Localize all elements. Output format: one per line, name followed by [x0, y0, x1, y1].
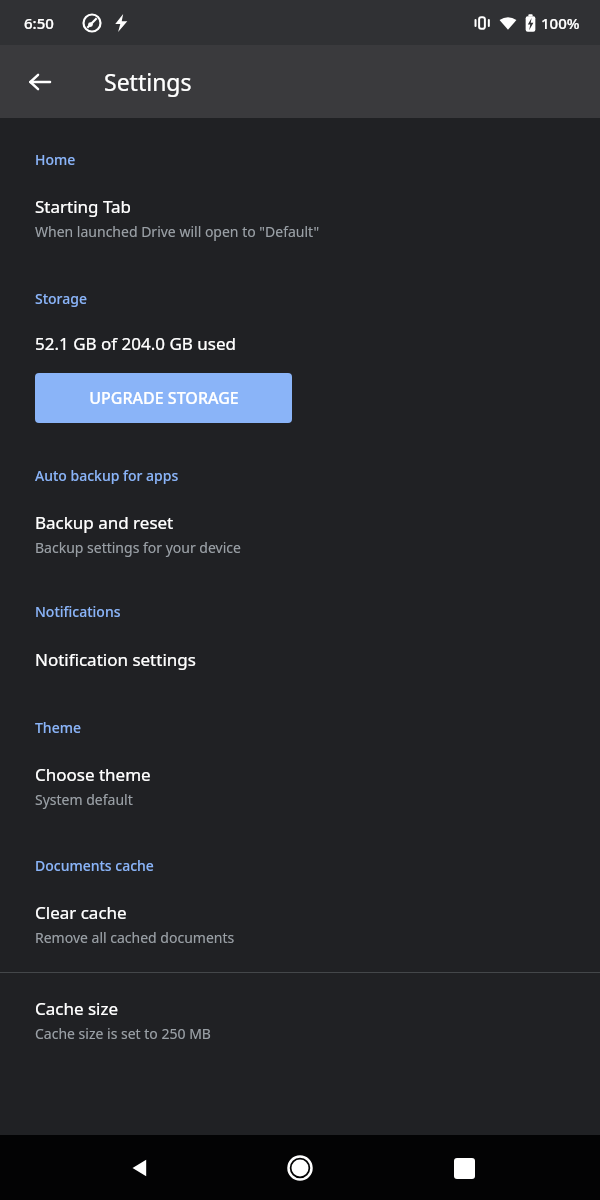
- button[interactable]: Back: [116, 1144, 164, 1192]
- button[interactable]: Backup and reset: [0, 485, 600, 557]
- staticText: Notifications: [35, 602, 121, 621]
- staticText: Auto backup for apps: [35, 466, 179, 485]
- button[interactable]: Clear cache: [0, 875, 600, 947]
- staticText: Theme: [35, 718, 81, 737]
- staticText: 6:50: [24, 13, 54, 33]
- staticText: Settings: [104, 66, 192, 97]
- button[interactable]: Cache size: [0, 973, 600, 1043]
- staticText: Cache size: [35, 997, 119, 1020]
- staticText: 100%: [541, 13, 580, 33]
- staticText: UPGRADE STORAGE: [89, 387, 239, 409]
- staticText: Remove all cached documents: [35, 928, 235, 947]
- staticText: Notification settings: [35, 648, 196, 671]
- button[interactable]: Starting Tab: [0, 169, 600, 241]
- staticText: Starting Tab: [35, 195, 132, 218]
- staticText: Storage: [35, 289, 87, 308]
- staticText: Choose theme: [35, 763, 151, 786]
- button[interactable]: UPGRADE STORAGE: [35, 373, 292, 423]
- button[interactable]: Choose theme: [0, 737, 600, 809]
- staticText: When launched Drive will open to "Defaul…: [35, 222, 320, 241]
- staticText: Backup settings for your device: [35, 538, 241, 557]
- staticText: Documents cache: [35, 856, 154, 875]
- staticText: Clear cache: [35, 901, 127, 924]
- button[interactable]: 52.1 GB of 204.0 GB used: [0, 308, 600, 355]
- staticText: Home: [35, 150, 76, 169]
- button[interactable]: Home: [276, 1144, 324, 1192]
- button[interactable]: Back: [16, 58, 64, 106]
- staticText: Backup and reset: [35, 511, 174, 534]
- button[interactable]: Notification settings: [0, 621, 600, 671]
- staticText: Cache size is set to 250 MB: [35, 1024, 211, 1043]
- staticText: System default: [35, 790, 133, 809]
- staticText: 52.1 GB of 204.0 GB used: [35, 332, 236, 355]
- button[interactable]: Recent apps: [440, 1144, 488, 1192]
